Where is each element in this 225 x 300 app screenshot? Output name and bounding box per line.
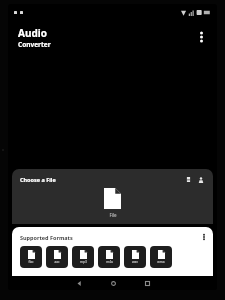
button[interactable]: m4a (98, 246, 120, 268)
button[interactable]: wma (150, 246, 172, 268)
staticText: Audio (18, 26, 47, 40)
button[interactable]: Recent apps (130, 276, 164, 290)
staticText: Supported Formats (20, 234, 73, 241)
staticText: flac (28, 260, 34, 264)
button[interactable]: Back (62, 276, 96, 290)
staticText: Converter (18, 40, 51, 49)
button[interactable]: More options (191, 27, 211, 47)
button[interactable]: mp3 (72, 246, 94, 268)
staticText: wav (132, 260, 138, 264)
staticText: Choose a File (20, 176, 56, 183)
button[interactable]: wav (124, 246, 146, 268)
staticText: File (109, 212, 117, 218)
staticText: aac (54, 260, 60, 264)
button[interactable]: Formats menu (199, 232, 209, 242)
button[interactable]: Choose a File (12, 169, 213, 224)
button[interactable]: flac (20, 246, 42, 268)
button[interactable]: Home (96, 276, 130, 290)
staticText: mp3 (80, 260, 87, 264)
button[interactable]: Storage (184, 175, 193, 184)
staticText: wma (157, 260, 165, 264)
staticText: m4a (106, 260, 113, 264)
button[interactable]: Account (196, 175, 205, 184)
button[interactable]: aac (46, 246, 68, 268)
